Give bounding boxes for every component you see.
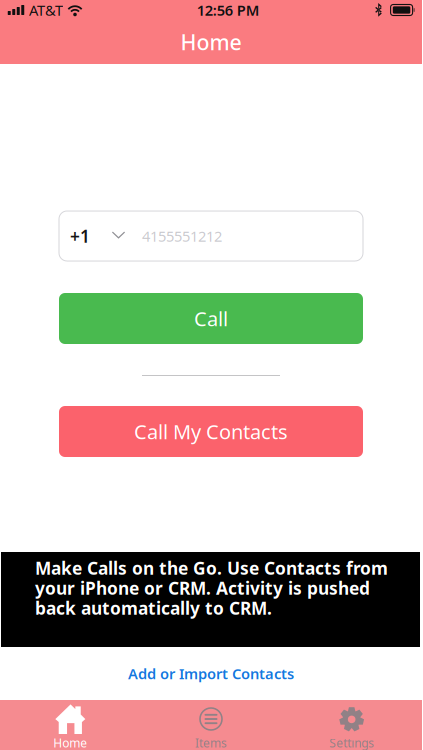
button[interactable]: Items — [141, 700, 281, 750]
staticText: Home — [180, 28, 241, 56]
button[interactable]: Home — [0, 700, 141, 750]
button[interactable]: Call My Contacts — [0, 406, 422, 457]
staticText: your iPhone or CRM. Activity is pushed — [35, 576, 370, 599]
staticText: Settings — [329, 735, 374, 750]
staticText: AT&T — [29, 0, 63, 20]
staticText: 12:56 PM — [197, 0, 260, 20]
staticText: 4155551212 — [142, 226, 222, 246]
staticText: Make Calls on the Go. Use Contacts from — [35, 556, 388, 579]
staticText: Add or Import Contacts — [128, 664, 294, 683]
staticText: Call — [194, 305, 228, 332]
staticText: Items — [195, 735, 227, 750]
staticText: +1 — [70, 224, 90, 247]
button[interactable]: Add or Import Contacts — [0, 647, 422, 700]
button[interactable]: Call — [0, 293, 422, 344]
staticText: back automatically to CRM. — [35, 596, 272, 619]
staticText: Home — [53, 735, 87, 750]
staticText: Call My Contacts — [134, 418, 288, 445]
button[interactable]: Settings — [281, 700, 422, 750]
